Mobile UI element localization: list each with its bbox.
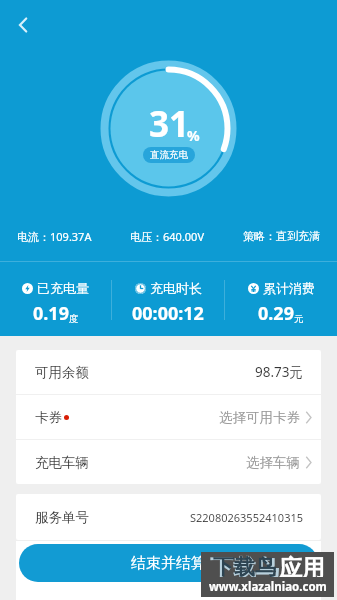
staticText: 0.29 <box>258 301 294 326</box>
staticText: 31 <box>149 100 190 148</box>
button[interactable]: 卡券 <box>16 395 321 439</box>
staticText: 策略：直到充满 <box>243 229 320 243</box>
button[interactable]: 结束并结算 <box>19 544 318 582</box>
staticText: % <box>187 126 200 145</box>
staticText: 结束并结算 <box>131 554 206 573</box>
staticText: 直流充电 <box>150 149 188 161</box>
staticText: 已充电量 <box>37 280 89 296</box>
staticText: 累计消费 <box>263 280 315 296</box>
staticText: 可用余额 <box>35 364 89 381</box>
button[interactable]: 直流充电 <box>150 147 188 163</box>
staticText: www.xlazalniao.com <box>209 579 327 595</box>
staticText: 度 <box>69 313 79 325</box>
staticText: 00:00:12 <box>132 301 204 326</box>
staticText: 电压：640.00V <box>130 229 205 244</box>
staticText: 元 <box>294 313 304 325</box>
staticText: 充电车辆 <box>35 454 89 471</box>
button[interactable]: Back <box>6 8 40 42</box>
staticText: 充电时长 <box>150 280 202 296</box>
staticText: 应用 <box>279 554 325 577</box>
button[interactable]: 充电车辆 <box>16 440 321 484</box>
staticText: 98.73元 <box>255 363 304 381</box>
staticText: 下载鸟 <box>213 554 276 577</box>
staticText: 选择可用卡券 <box>219 409 300 426</box>
button[interactable]: 可用余额 <box>16 350 321 394</box>
staticText: 0.19 <box>33 301 69 326</box>
staticText: S22080263552410315 <box>190 510 304 525</box>
staticText: 选择车辆 <box>246 454 300 471</box>
staticText: 下载鸟 <box>210 554 279 577</box>
staticText: 卡券 <box>35 409 62 426</box>
button[interactable]: 服务单号 <box>16 494 321 540</box>
staticText: 电流：109.37A <box>17 229 92 244</box>
staticText: 服务单号 <box>35 509 89 526</box>
